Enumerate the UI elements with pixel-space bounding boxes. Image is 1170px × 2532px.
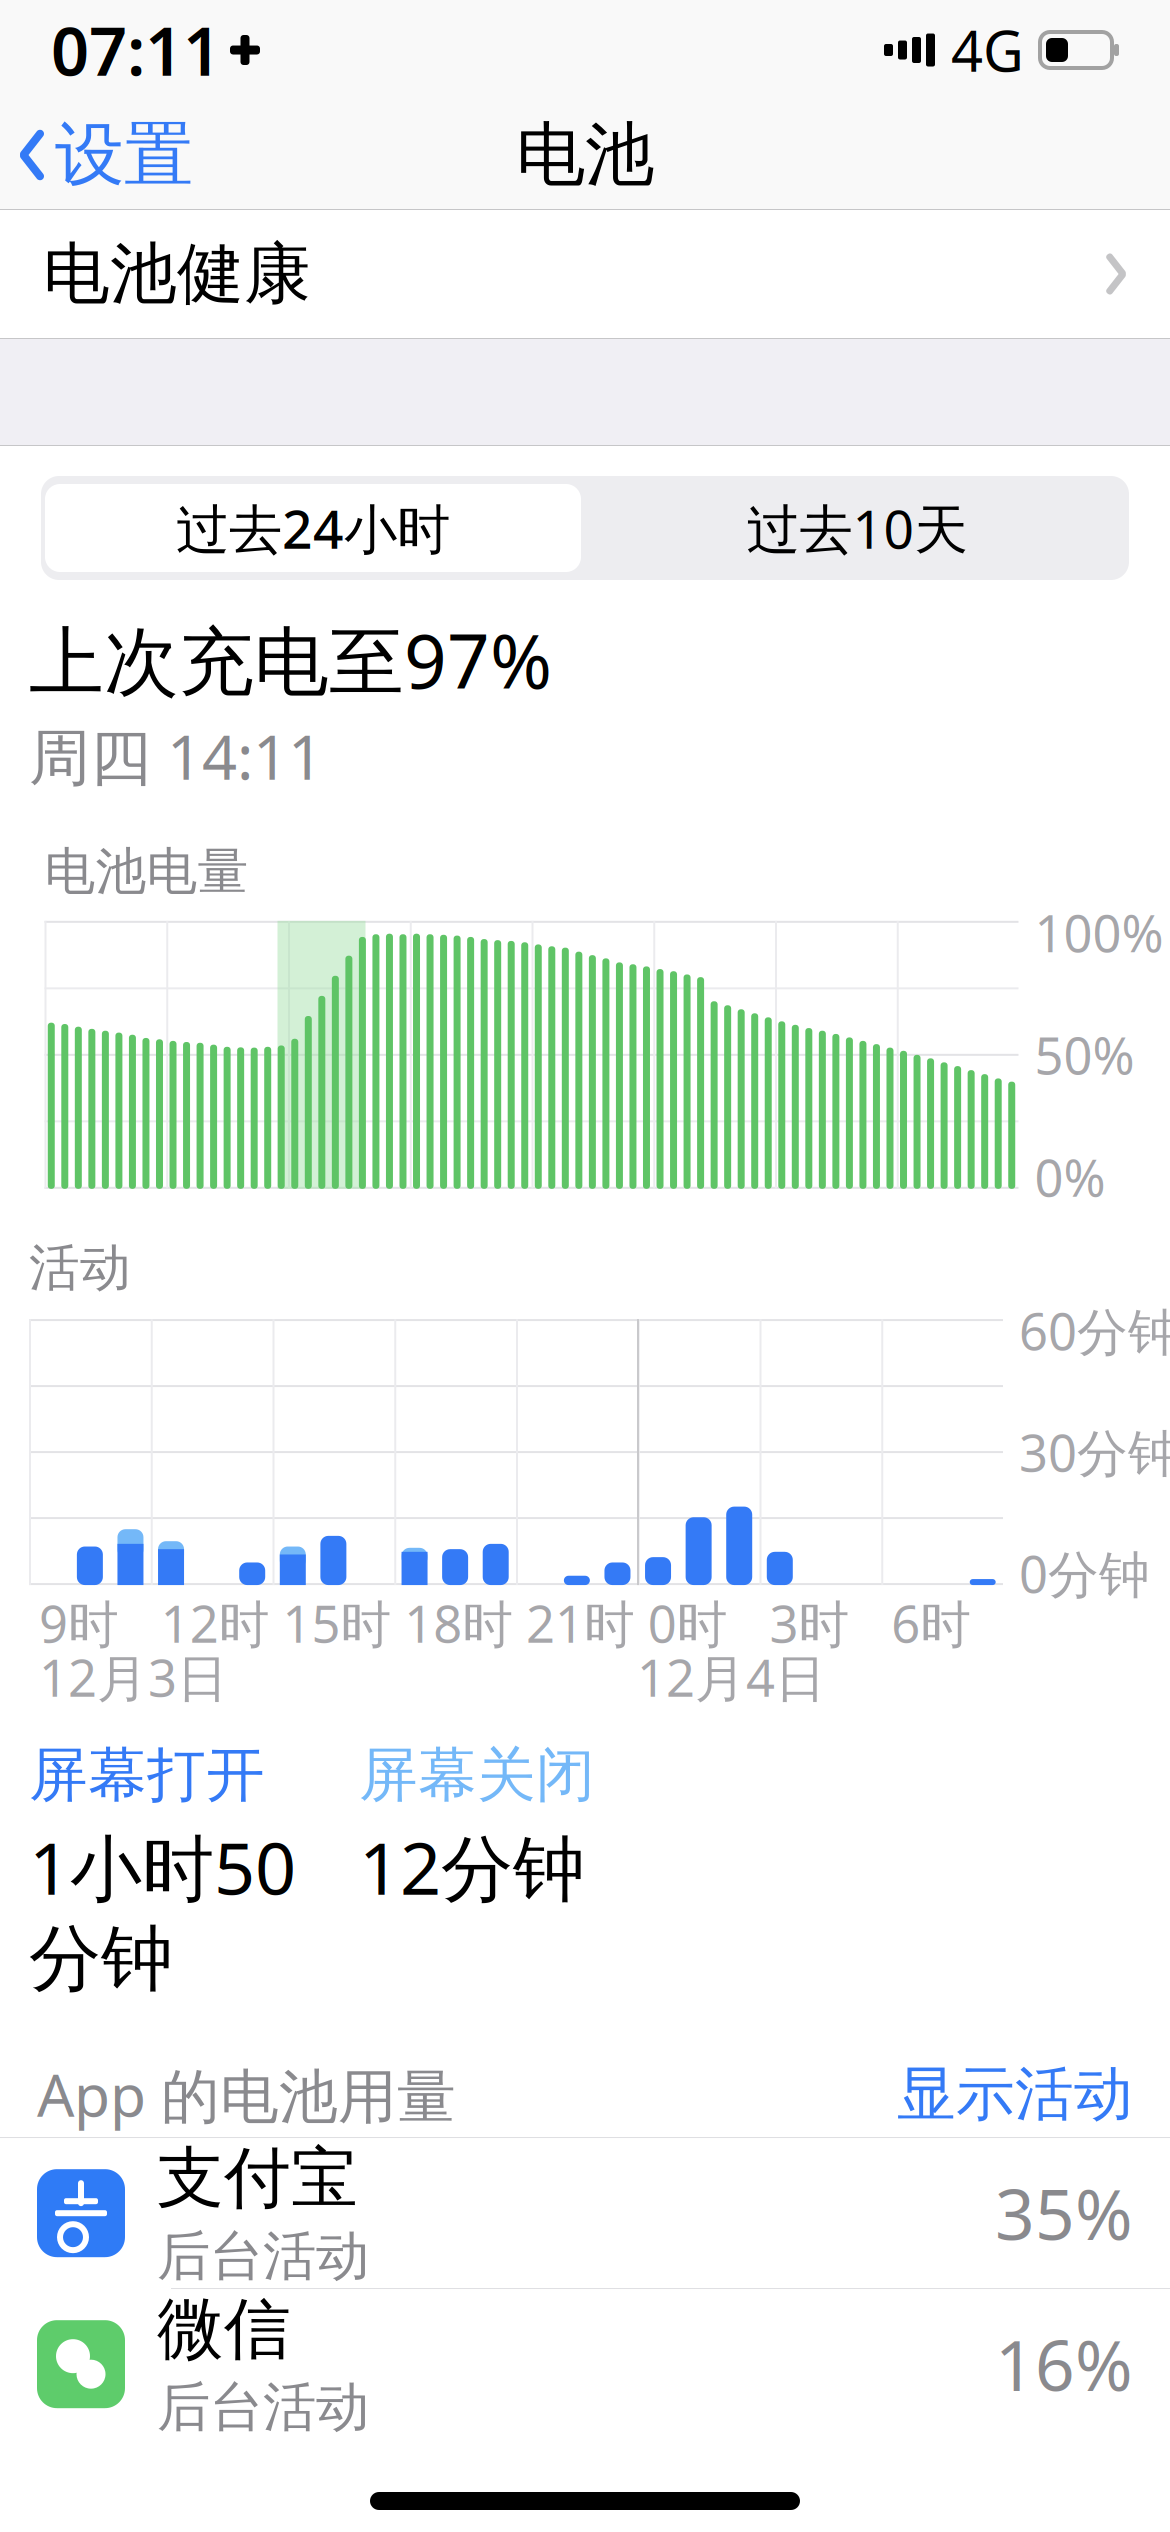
staticText: 12月4日: [637, 1643, 826, 1711]
staticText: 活动: [29, 1237, 131, 1299]
staticText: 4G: [951, 13, 1024, 87]
staticText: 过去24小时: [176, 493, 450, 563]
staticText: 100%: [1034, 899, 1163, 966]
staticText: 15时: [282, 1589, 391, 1657]
staticText: 12分钟: [359, 1819, 585, 1915]
staticText: 显示活动: [897, 2058, 1133, 2130]
staticText: 18时: [404, 1589, 513, 1657]
staticText: 后台活动: [157, 2374, 369, 2440]
staticText: 屏幕关闭: [359, 1739, 595, 1811]
staticText: 30分钟: [1019, 1418, 1170, 1486]
staticText: 3时: [769, 1589, 849, 1657]
button[interactable]: 显示活动: [897, 2058, 1133, 2130]
button[interactable]: 电池健康: [0, 210, 1170, 338]
staticText: 支付宝: [157, 2137, 358, 2219]
staticText: 后台活动: [157, 2223, 369, 2289]
staticText: 50%: [1034, 1021, 1134, 1088]
button[interactable]: 过去10天: [585, 480, 1129, 576]
button[interactable]: 过去24小时: [41, 480, 585, 576]
staticText: 0时: [648, 1589, 728, 1657]
staticText: 9时: [39, 1589, 119, 1657]
staticText: 过去10天: [746, 493, 967, 563]
staticText: 电池: [516, 112, 654, 198]
staticText: 周四 14:11: [29, 715, 323, 797]
staticText: 6时: [891, 1589, 971, 1657]
staticText: 屏幕打开: [29, 1739, 265, 1811]
staticText: 设置: [55, 112, 193, 198]
staticText: 电池电量: [44, 841, 248, 903]
staticText: 1小时50分钟: [29, 1819, 296, 2003]
staticText: 35%: [995, 2167, 1133, 2259]
staticText: 16%: [995, 2318, 1133, 2410]
staticText: 0分钟: [1019, 1540, 1150, 1607]
button[interactable]: 设置: [0, 98, 193, 212]
staticText: 0%: [1034, 1144, 1105, 1211]
staticText: 21时: [526, 1589, 635, 1657]
staticText: App 的电池用量: [37, 2055, 456, 2133]
staticText: 12时: [161, 1589, 270, 1657]
staticText: 07:11: [51, 6, 221, 94]
button[interactable]: 支付宝: [0, 2138, 1170, 2289]
staticText: 60分钟: [1019, 1297, 1170, 1364]
staticText: 电池健康: [43, 233, 311, 315]
staticText: 微信: [157, 2288, 291, 2370]
button[interactable]: 微信: [0, 2289, 1170, 2439]
staticText: 12月3日: [39, 1643, 228, 1711]
staticText: 上次充电至97%: [29, 610, 552, 709]
